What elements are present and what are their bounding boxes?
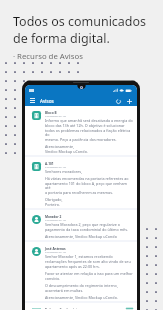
staticText: Atenciosamente, Síndico Mockup uCondo. <box>45 295 118 300</box>
staticText: mesmo. Peço a paciência dos moradores. <box>45 137 117 142</box>
staticText: convívio. <box>45 276 61 281</box>
staticText: a portaria para recolherem as mesmas. <box>45 190 113 195</box>
staticText: reclamações frequentes de som alto vindo… <box>45 259 131 264</box>
staticText: Atenciosamente, <box>45 144 75 149</box>
staticText: Todos os comunicados <box>13 13 147 30</box>
button[interactable]: Refresh <box>113 96 123 106</box>
button[interactable]: Morador 2 <box>25 210 137 240</box>
staticText: Favor se atentar em relação a isso para … <box>45 271 133 276</box>
staticText: Síndico Mockup uCondo. <box>45 149 88 154</box>
staticText: Atenciosamente, Síndico Mockup uCondo <box>45 234 117 239</box>
staticText: Todos os Condomínios <box>45 308 81 309</box>
button[interactable]: José Antenas <box>25 242 137 301</box>
button[interactable]: Bloco B <box>25 106 137 155</box>
staticText: O descumprimento do regimento interno, <box>45 283 118 288</box>
button[interactable]: Menu <box>28 96 37 105</box>
staticText: apartamento 101 do bloco A, peço que ven… <box>45 181 133 190</box>
staticText: 3 de novembro às 11:34 <box>45 115 67 118</box>
staticText: pagamento da taxa condominial do último … <box>45 227 128 232</box>
staticText: Senhores moradores, <box>45 169 83 174</box>
staticText: 3 de novembro às 11:34 <box>45 166 67 169</box>
staticText: Bloco B <box>45 111 57 115</box>
staticText: de forma digital. <box>13 30 110 47</box>
staticText: Morador 2 <box>45 215 62 219</box>
staticText: Senhor Morador 1, estamos recebendo <box>45 254 113 259</box>
staticText: Avisos <box>40 98 54 104</box>
button[interactable]: A-101 <box>25 157 137 208</box>
staticText: A-101 <box>45 162 54 166</box>
staticText: Senhora Moradora 2, peço que regularize … <box>45 222 120 227</box>
staticText: acarretará em multas. <box>45 288 84 293</box>
staticText: todos os problemas relacionados a fiação… <box>45 128 133 137</box>
staticText: José Antenas <box>45 247 66 251</box>
button[interactable]: Todos os Condomínios <box>25 303 137 310</box>
button[interactable]: Add <box>124 96 134 106</box>
staticText: 3 de novembro às 11:34 <box>45 219 67 222</box>
staticText: 3 de novembro às 11:34 <box>45 251 67 254</box>
staticText: Obrigado, <box>45 197 63 202</box>
staticText: apartamento após as 22:00 hrs. <box>45 264 100 269</box>
staticText: · Recurso de Avisos <box>13 51 83 62</box>
staticText: Informo que amanhã será desativada a ene… <box>45 118 133 123</box>
staticText: Há várias encomendas na portaria referen… <box>45 176 129 181</box>
staticText: bloco das 13h até 12h. O objetivo é solu… <box>45 123 125 128</box>
staticText: Porteiro. <box>45 202 61 207</box>
